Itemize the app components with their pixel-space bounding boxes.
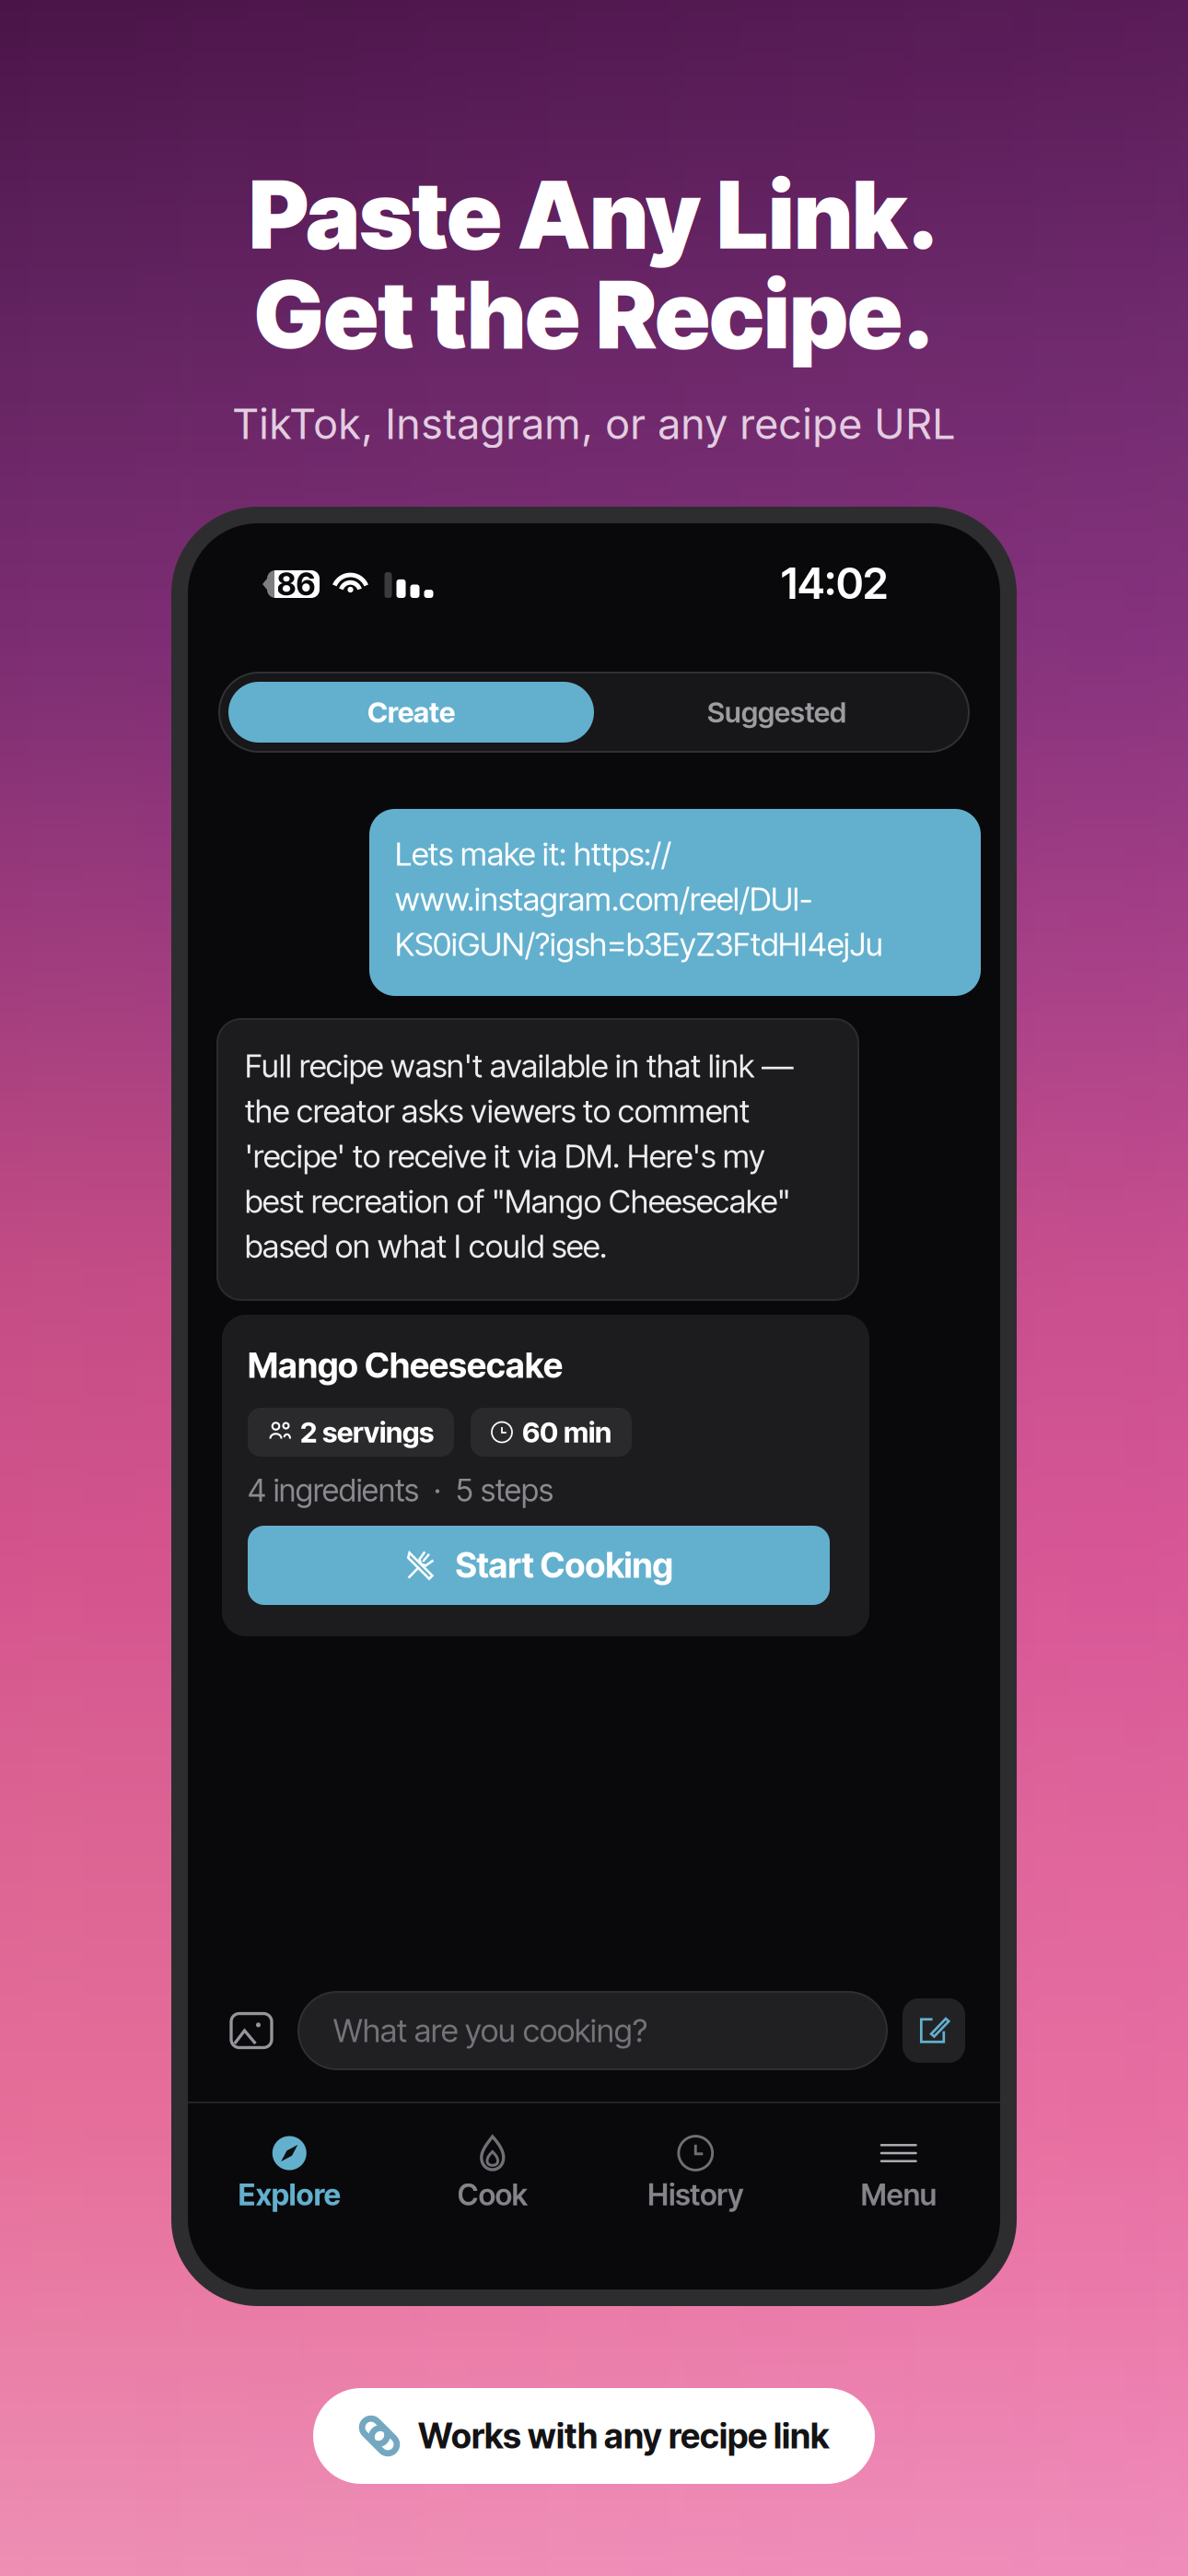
staticText: What are you cooking?: [333, 2011, 647, 2050]
staticText: 60 min: [522, 1415, 611, 1449]
staticText: Create: [367, 695, 455, 729]
button[interactable]: Create: [228, 682, 594, 743]
button[interactable]: Cook: [391, 2135, 594, 2236]
button[interactable]: Works with any recipe link: [313, 2388, 875, 2484]
button[interactable]: Suggested: [594, 682, 960, 743]
staticText: Paste Any Link.: [249, 158, 939, 271]
staticText: Works with any recipe link: [418, 2415, 829, 2457]
staticText: Cook: [458, 2177, 528, 2212]
staticText: Suggested: [707, 695, 846, 729]
staticText: 14:02: [781, 557, 888, 609]
staticText: TikTok, Instagram, or any recipe URL: [232, 399, 956, 449]
staticText: Explore: [238, 2177, 341, 2212]
staticText: 2 servings: [300, 1415, 434, 1449]
button[interactable]: History: [594, 2135, 797, 2236]
staticText: Menu: [861, 2177, 936, 2212]
staticText: Full recipe wasn't available in that lin…: [245, 1047, 794, 1266]
staticText: History: [648, 2177, 743, 2212]
staticText: 86: [277, 566, 315, 603]
button[interactable]: Menu: [797, 2135, 1000, 2236]
button[interactable]: Explore: [188, 2135, 391, 2236]
staticText: Get the Recipe.: [254, 258, 934, 371]
button[interactable]: Attach photo: [222, 1992, 281, 2069]
button[interactable]: Start Cooking: [248, 1526, 830, 1605]
staticText: 4 ingredients · 5 steps: [248, 1472, 553, 1509]
staticText: Lets make it: https://www.instagram.com/…: [395, 835, 883, 964]
button[interactable]: New chat: [903, 1998, 965, 2063]
staticText: Mango Cheesecake: [248, 1345, 563, 1386]
staticText: Start Cooking: [455, 1544, 673, 1586]
